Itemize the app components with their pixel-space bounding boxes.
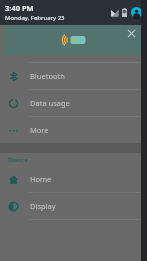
button[interactable]: Dismiss — [4, 25, 141, 55]
button[interactable]: Home — [0, 166, 147, 192]
button[interactable]: Wi-Fi — [0, 36, 147, 62]
button[interactable]: Display — [0, 193, 147, 219]
button[interactable]: User profile — [131, 7, 142, 18]
button[interactable]: Dismiss — [126, 28, 137, 39]
staticText: Display — [30, 201, 56, 211]
staticText: 3:40 PM — [5, 3, 34, 13]
button[interactable]: Data usage — [0, 90, 147, 116]
button[interactable]: Bluetooth — [0, 63, 147, 89]
staticText: Home — [30, 174, 52, 184]
staticText: Data usage — [30, 98, 70, 108]
staticText: Device — [8, 156, 28, 164]
button[interactable]: More — [0, 117, 147, 143]
staticText: More — [30, 125, 49, 135]
staticText: Bluetooth — [30, 71, 65, 81]
staticText: Monday, February 23 — [5, 14, 65, 22]
